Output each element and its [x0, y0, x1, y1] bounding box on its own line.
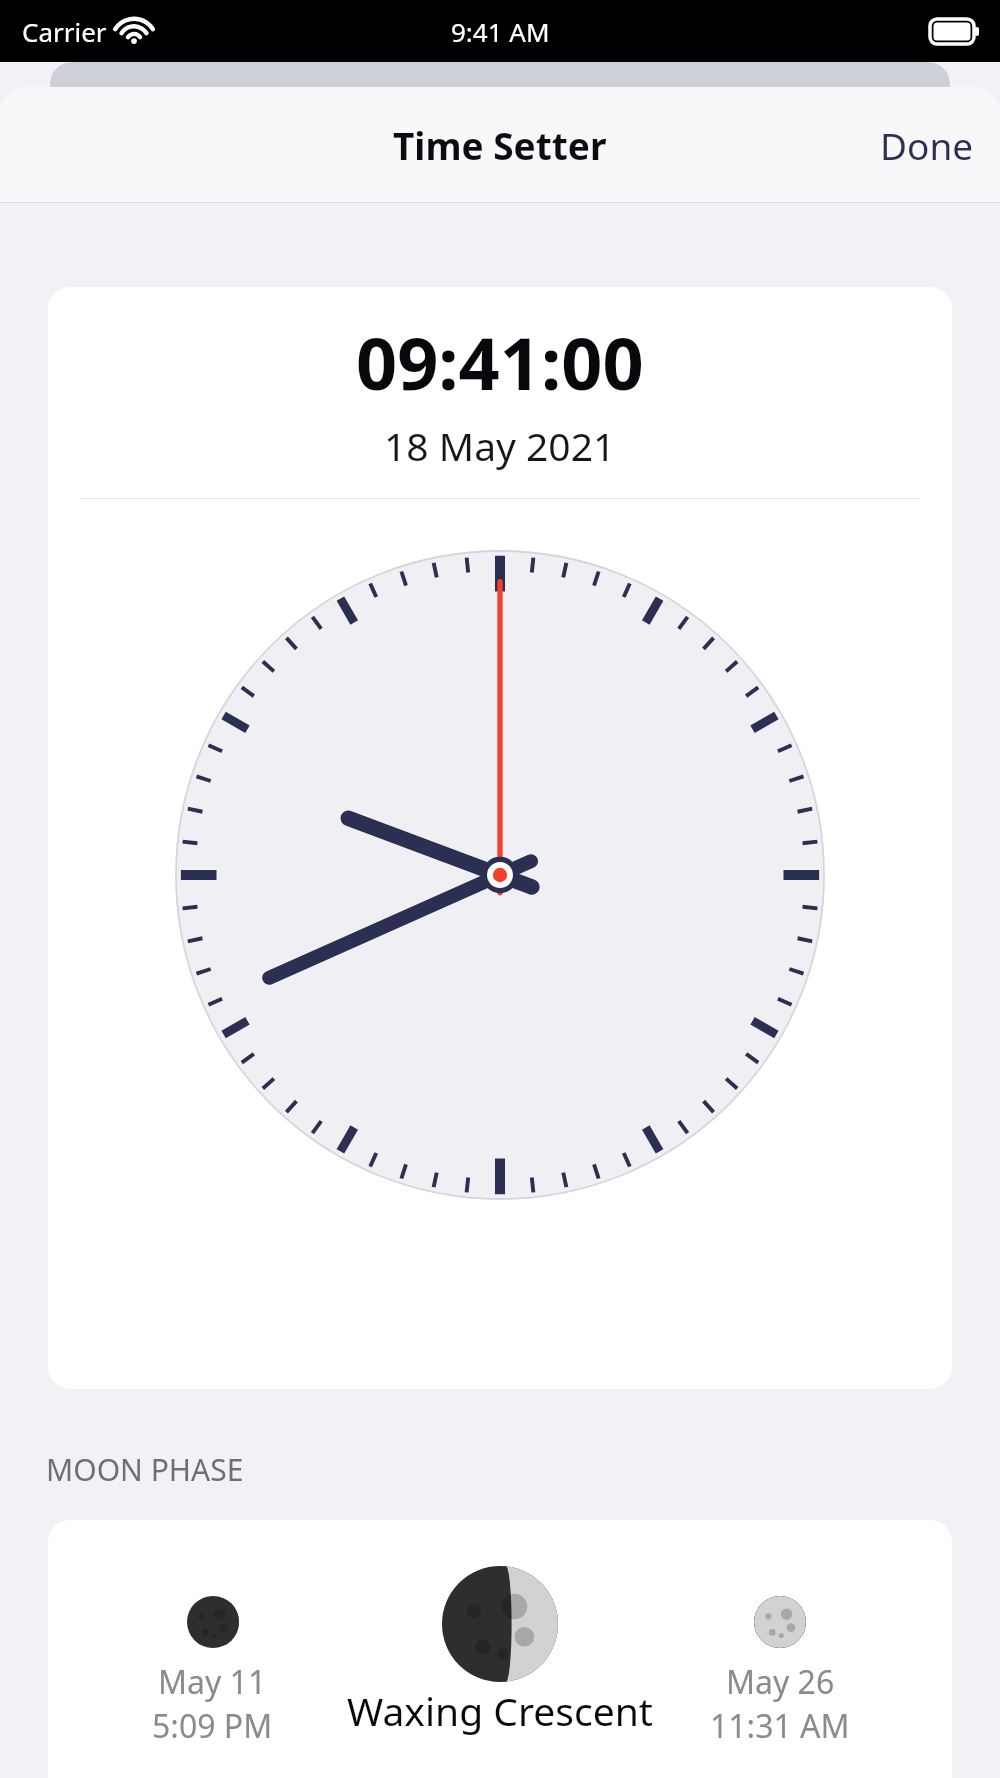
button[interactable]: 09:41:00: [48, 287, 952, 1389]
staticText: Waxing Crescent: [347, 1684, 653, 1737]
staticText: Time Setter: [393, 120, 607, 170]
staticText: 09:41:00: [356, 313, 644, 411]
button[interactable]: May 11: [48, 1520, 952, 1778]
staticText: Carrier: [22, 14, 107, 49]
other: Analog clock showing 9:41: [176, 551, 824, 1199]
staticText: 18 May 2021: [384, 419, 616, 472]
staticText: May 11: [158, 1660, 267, 1704]
staticText: Done: [880, 120, 974, 170]
staticText: 11:31 AM: [710, 1704, 850, 1748]
staticText: 9:41 AM: [451, 14, 550, 49]
staticText: May 26: [726, 1660, 835, 1704]
staticText: 5:09 PM: [152, 1704, 273, 1748]
button[interactable]: Done: [854, 104, 1000, 186]
staticText: MOON PHASE: [46, 1449, 244, 1490]
